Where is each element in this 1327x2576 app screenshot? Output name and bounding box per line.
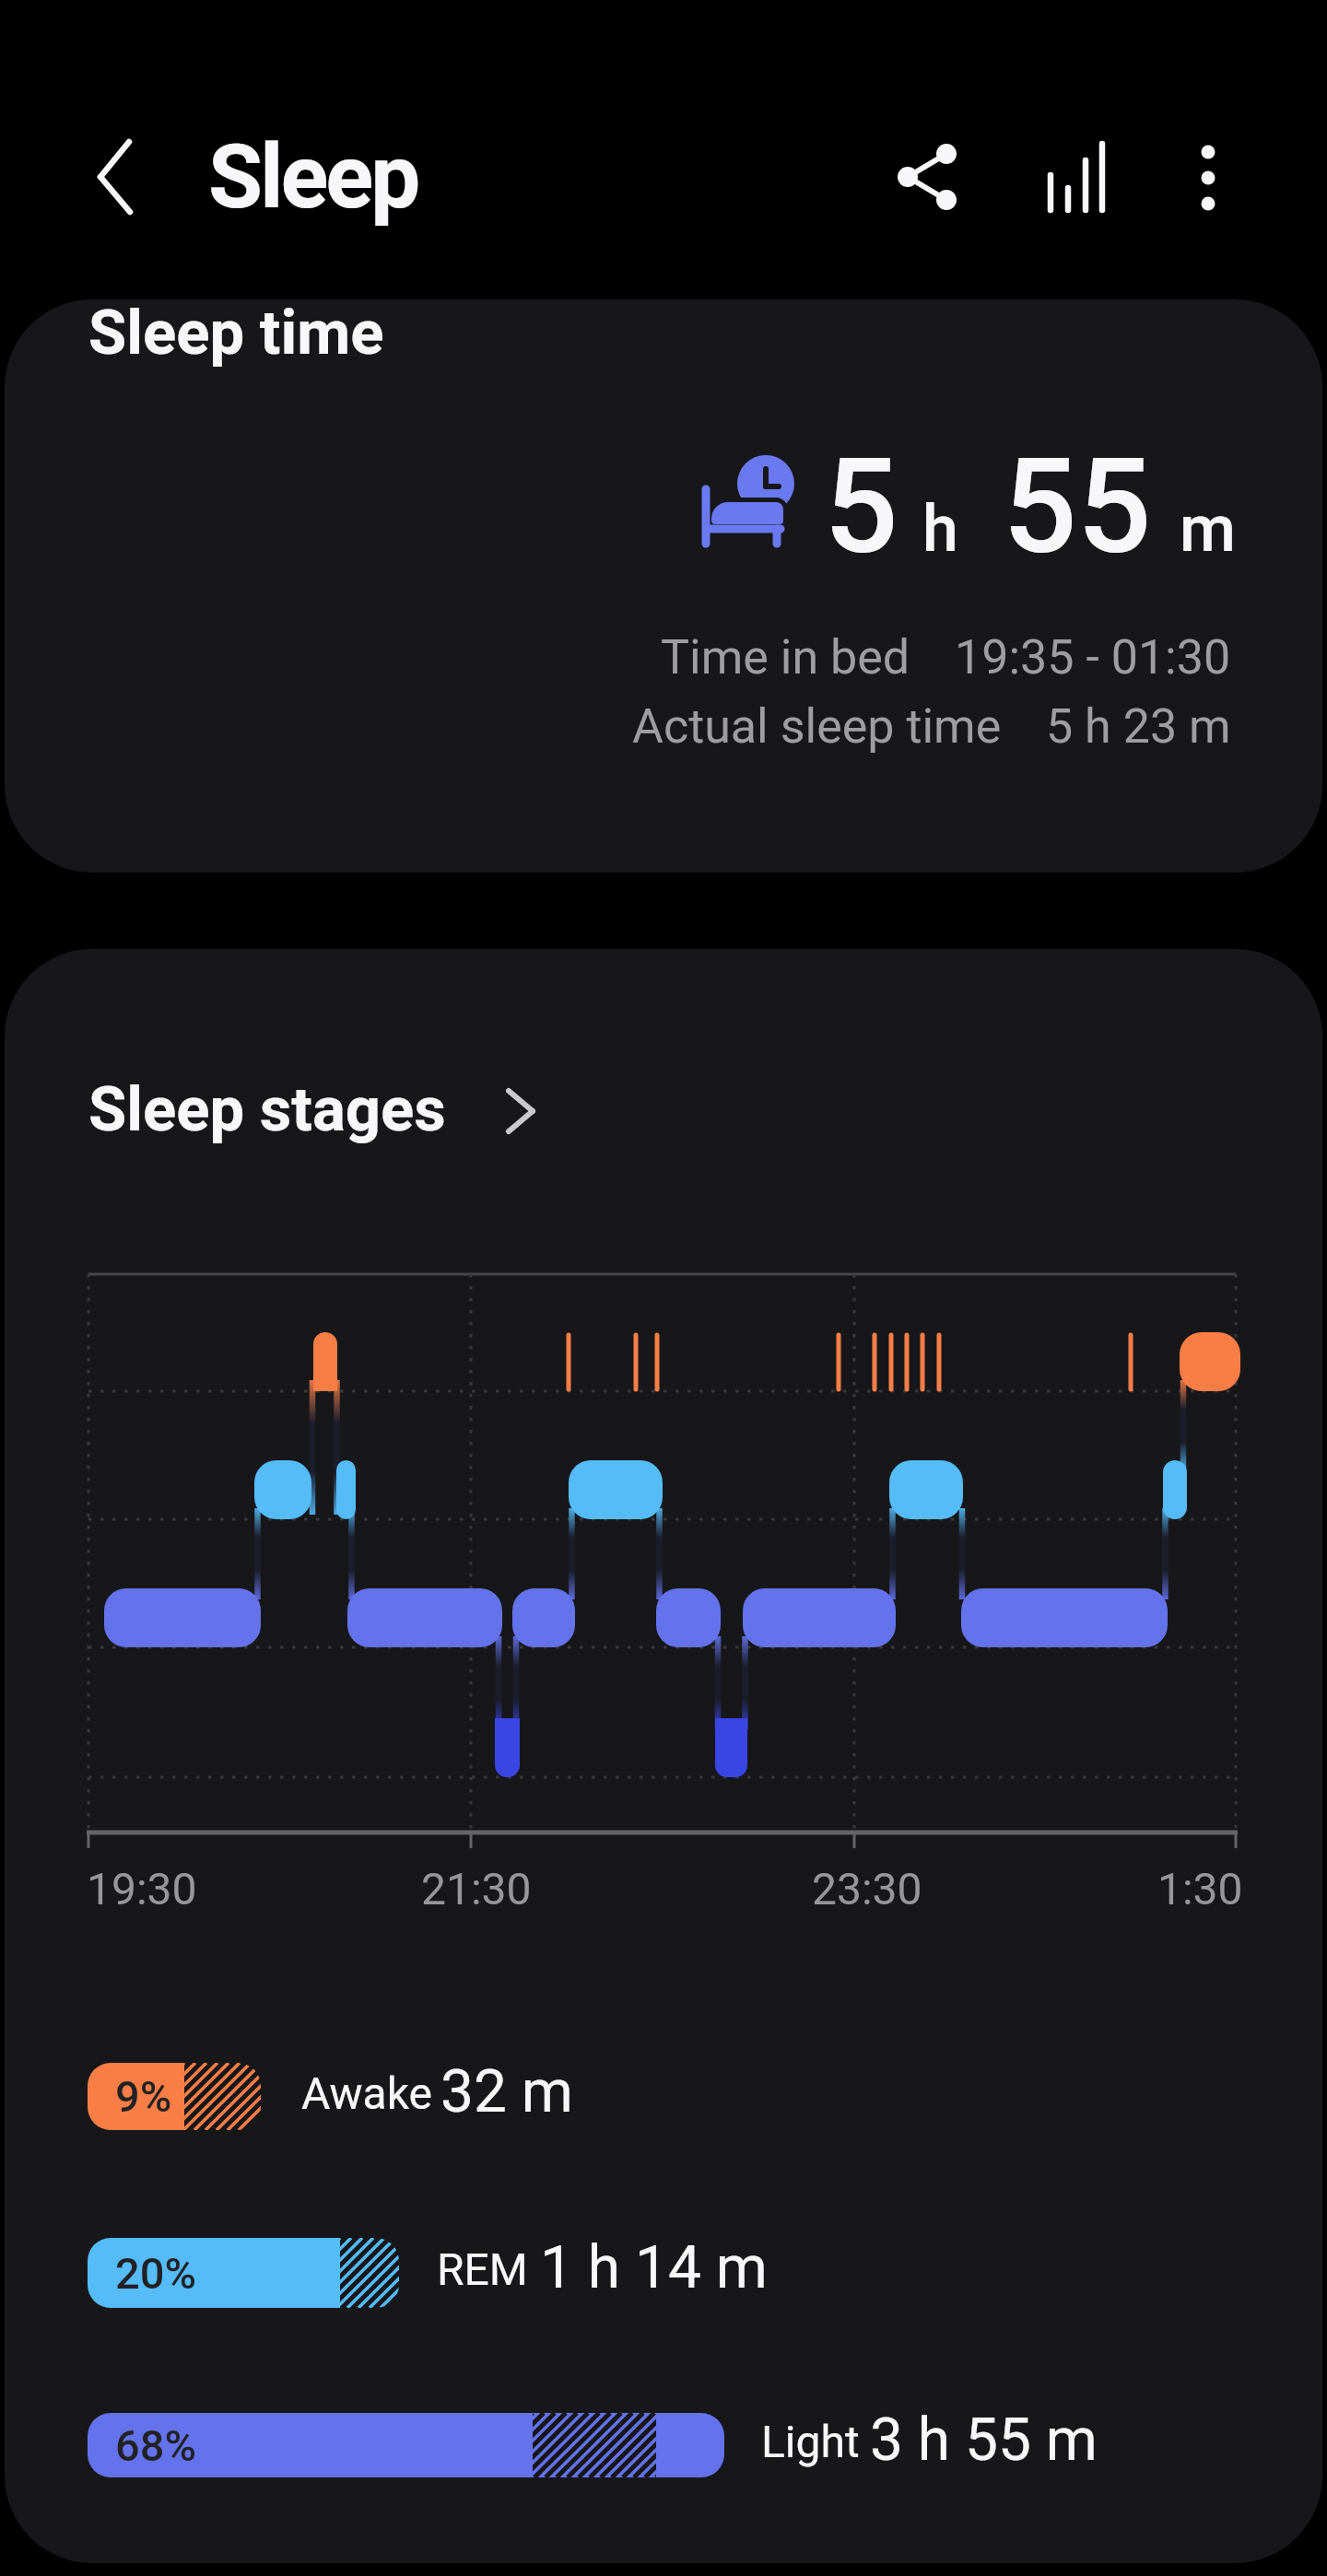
staticText: 1:30 [1157, 1863, 1243, 1914]
staticText: 19:35 - 01:30 [955, 629, 1231, 685]
staticText: 1 h 14 m [540, 2233, 768, 2302]
staticText: 9% [115, 2071, 172, 2122]
staticText: Actual sleep time [632, 698, 1002, 755]
button[interactable] [1020, 122, 1131, 232]
staticText: Light [761, 2416, 860, 2467]
staticText: 68% [115, 2420, 196, 2471]
staticText: Sleep stages [88, 1073, 446, 1146]
staticText: REM [437, 2243, 528, 2295]
button[interactable] [65, 124, 166, 226]
staticText: m [1180, 491, 1236, 567]
button[interactable]: 20% [88, 2238, 399, 2308]
staticText: 5 h 23 m [1046, 698, 1231, 755]
staticText: 3 h 55 m [870, 2406, 1098, 2475]
button[interactable]: 5 [5, 299, 1322, 872]
staticText: h [922, 491, 958, 567]
staticText: 32 m [440, 2057, 573, 2126]
staticText: 21:30 [421, 1863, 532, 1914]
staticText: Time in bed [661, 629, 910, 685]
staticText: 5 [824, 430, 898, 583]
button[interactable] [872, 122, 982, 232]
button[interactable]: 68% [88, 2413, 724, 2477]
staticText: 20% [115, 2248, 196, 2299]
staticText: 23:30 [812, 1863, 922, 1914]
staticText: Sleep [208, 125, 418, 229]
staticText: Sleep time [88, 297, 384, 369]
button[interactable] [1153, 122, 1263, 232]
staticText: 19:30 [87, 1863, 197, 1914]
staticText: Awake [301, 2067, 433, 2119]
button[interactable] [83, 1050, 553, 1152]
button[interactable]: 9% [88, 2063, 261, 2130]
staticText: 55 [1003, 430, 1152, 583]
